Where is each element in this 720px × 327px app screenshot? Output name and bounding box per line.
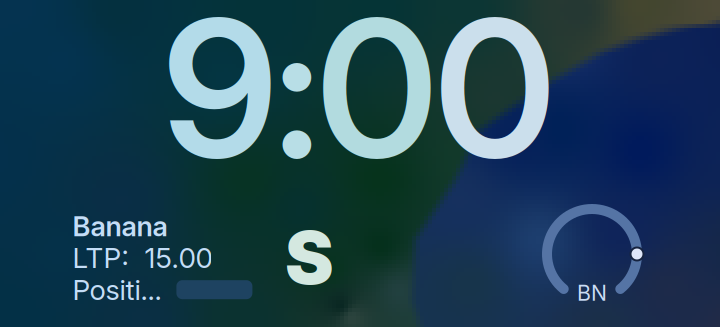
button[interactable]: S complication	[286, 213, 333, 302]
staticText: 0	[317, 0, 438, 203]
staticText: Banana	[72, 210, 167, 243]
button[interactable]: Banana	[72, 210, 252, 307]
staticText: :	[275, 0, 320, 203]
staticText: BN	[577, 280, 607, 306]
staticText: S	[286, 213, 333, 302]
button[interactable]: BN gauge	[532, 194, 652, 314]
staticText: Positi...	[72, 273, 161, 307]
staticText: LTP: 15.00	[72, 241, 212, 275]
staticText: 0	[435, 0, 556, 203]
staticText: 9	[163, 0, 278, 203]
